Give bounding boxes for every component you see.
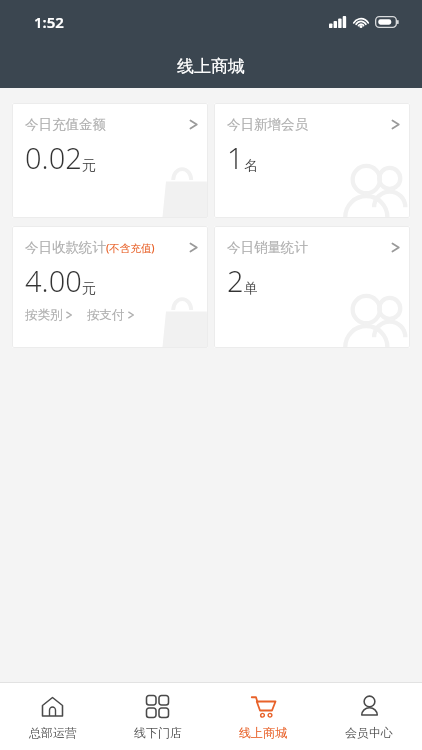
button[interactable]: 线上商城	[210, 686, 316, 748]
staticText: 按支付	[87, 307, 125, 323]
staticText: 今日充值金额	[25, 116, 106, 133]
staticText: (不含充值)	[106, 241, 155, 255]
button[interactable]: 按支付	[87, 307, 135, 323]
staticText: 名	[244, 157, 258, 175]
staticText: 线上商城	[239, 725, 287, 740]
staticText: 今日收款统计	[25, 239, 106, 256]
staticText: 今日新增会员	[227, 116, 308, 133]
button[interactable]: 按类别	[25, 307, 73, 323]
staticText: 0.02	[25, 138, 82, 177]
button[interactable]: 今日新增会员	[214, 103, 410, 218]
button[interactable]: 会员中心	[316, 686, 422, 748]
button[interactable]: 今日收款统计	[12, 226, 208, 348]
staticText: 2	[227, 261, 244, 300]
staticText: 总部运营	[29, 725, 77, 740]
staticText: 线上商城	[177, 56, 245, 77]
button[interactable]: 今日充值金额	[12, 103, 208, 218]
button[interactable]: 线下门店	[105, 686, 210, 748]
staticText: 1:52	[34, 12, 64, 32]
button[interactable]: 总部运营	[0, 686, 105, 748]
staticText: 元	[82, 157, 96, 175]
staticText: 1	[227, 138, 244, 177]
staticText: 线下门店	[134, 725, 182, 740]
staticText: 按类别	[25, 307, 63, 323]
staticText: 单	[244, 280, 258, 298]
staticText: 今日销量统计	[227, 239, 308, 256]
staticText: 元	[82, 280, 96, 298]
staticText: 4.00	[25, 261, 82, 300]
staticText: 会员中心	[345, 725, 393, 740]
button[interactable]: 今日销量统计	[214, 226, 410, 348]
